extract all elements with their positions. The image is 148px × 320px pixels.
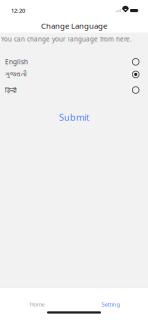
button[interactable]: Submit: [0, 111, 148, 124]
staticText: Setting: [101, 300, 120, 308]
staticText: हिन्दी: [5, 86, 17, 94]
button[interactable]: Home: [0, 297, 74, 311]
staticText: Submit: [59, 111, 89, 123]
button[interactable]: Setting: [74, 297, 148, 311]
staticText: English: [5, 57, 28, 66]
button[interactable]: English: [0, 56, 148, 67]
button[interactable]: ગુજરાતી: [0, 67, 148, 81]
staticText: Home: [29, 300, 44, 308]
staticText: You can change your language from here.: [1, 35, 132, 43]
staticText: ગુજરાતી: [5, 71, 27, 78]
staticText: Change Language: [41, 20, 107, 31]
button[interactable]: हिन्दी: [0, 81, 148, 99]
staticText: 12:20: [11, 7, 25, 14]
